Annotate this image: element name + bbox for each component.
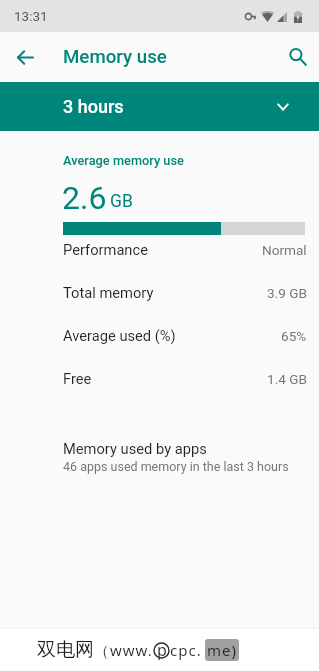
staticText: Free [63,370,92,387]
staticText: （www. [94,640,153,660]
staticText: 46 apps used memory in the last 3 hours [63,459,289,474]
button[interactable]: Average used (%) [0,314,319,357]
staticText: cpc. [170,640,202,660]
staticText: Memory used by apps [63,440,207,457]
staticText: Total memory [63,284,154,301]
staticText: 65% [281,328,307,344]
staticText: 13:31 [14,8,48,24]
button[interactable]: Free [0,357,319,400]
button[interactable]: Memory used by apps [0,436,319,480]
button[interactable]: Performance [0,228,319,271]
staticText: Memory use [63,46,167,68]
button[interactable]: 3 hours [0,82,319,131]
staticText: Normal [262,242,307,258]
staticText: 1.4 GB [267,371,307,387]
staticText: 3 hours [63,96,124,117]
staticText: Average used (%) [63,327,176,344]
staticText: 3.9 GB [267,285,307,301]
button[interactable]: Total memory [0,271,319,314]
button[interactable]: Search [277,36,319,78]
button[interactable]: Navigate up [4,36,46,78]
staticText: Average memory use [63,153,184,168]
staticText: GB [110,191,133,212]
staticText: me) [207,640,237,660]
staticText: Performance [63,241,148,258]
staticText: 双电网 [37,638,94,662]
staticText: 2.6 [62,179,107,217]
staticText: p [157,639,167,661]
